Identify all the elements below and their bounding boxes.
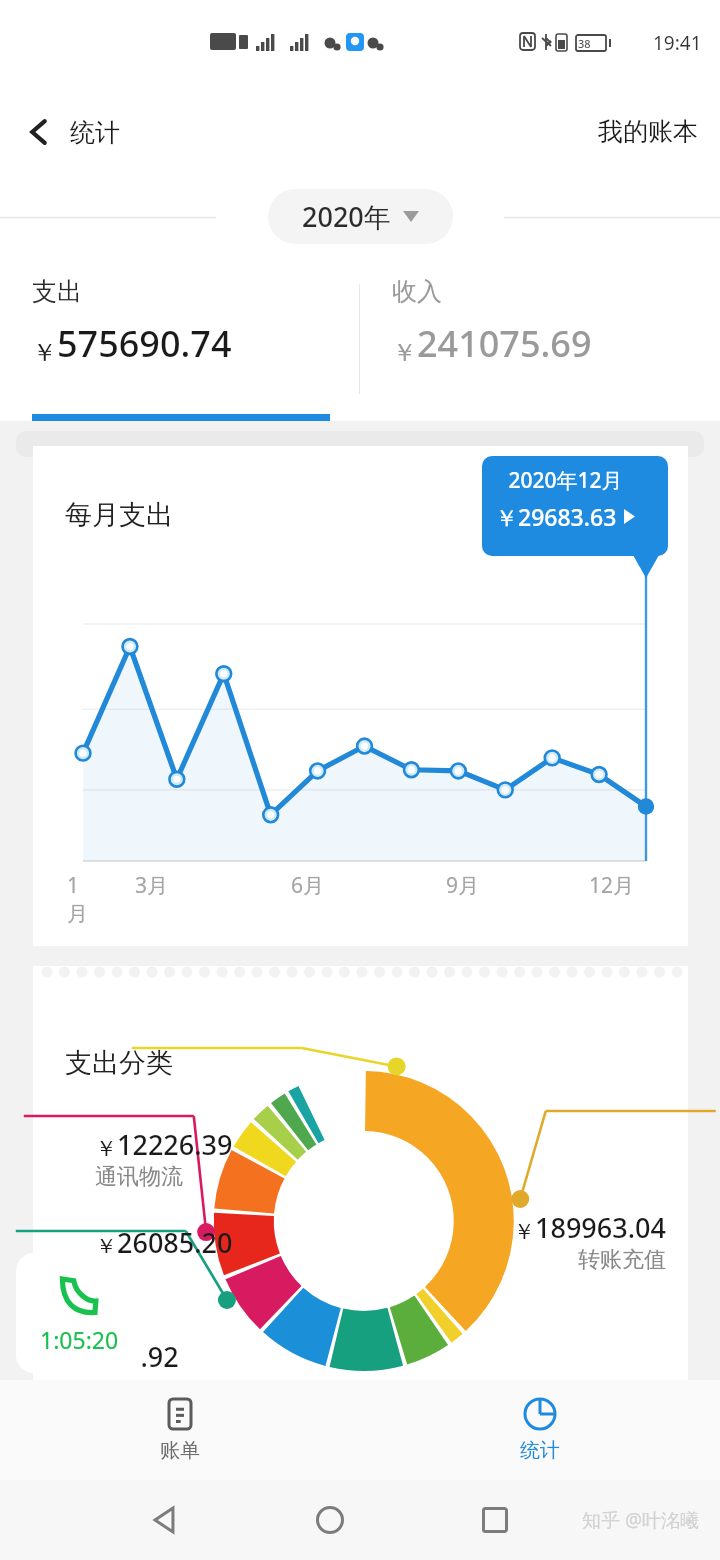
staticText: 2020年 [302, 198, 391, 235]
staticText: 9月 [446, 871, 480, 900]
staticText: 1:05:20 [40, 1324, 119, 1355]
staticText: 189963.04 [535, 1209, 666, 1246]
staticText: 2020年12月 [508, 466, 623, 495]
staticText: ￥ [95, 1135, 117, 1163]
staticText: 12226.39 [117, 1126, 233, 1163]
button[interactable]: 支出 [0, 256, 359, 421]
button[interactable]: 统计 [360, 1380, 720, 1480]
staticText: ￥ [32, 337, 57, 368]
staticText: 26085.20 [117, 1224, 233, 1261]
staticText: 知乎 @叶洺曦 [582, 1507, 700, 1533]
staticText: ￥ [392, 337, 417, 368]
staticText: 每月支出 [65, 498, 173, 532]
other: Back [26, 115, 52, 149]
button[interactable]: Back [0, 107, 132, 157]
button[interactable]: 每月支出 [33, 446, 688, 946]
button[interactable]: Ongoing call [16, 1253, 142, 1373]
staticText: 241075.69 [417, 319, 592, 368]
staticText: ￥ [95, 1233, 117, 1261]
staticText: 支出 [32, 276, 82, 307]
staticText: 12月 [589, 871, 635, 900]
staticText: 统计 [70, 117, 120, 148]
button[interactable]: 我的账本 [576, 106, 720, 157]
staticText: 38 [578, 36, 591, 51]
button[interactable]: Back [136, 1492, 192, 1548]
staticText: 我的账本 [598, 116, 698, 147]
staticText: 转账充值 [578, 1246, 666, 1274]
staticText: 0.92 [125, 1338, 179, 1375]
staticText: 账单 [160, 1438, 200, 1463]
button[interactable]: Recents [468, 1493, 522, 1547]
staticText: 收入 [392, 276, 442, 307]
staticText: 支出分类 [65, 1046, 173, 1080]
button[interactable]: 账单 [0, 1380, 360, 1480]
staticText: 3月 [135, 871, 169, 900]
button[interactable]: Home [302, 1492, 358, 1548]
button[interactable]: 支出分类 [33, 966, 688, 1380]
button[interactable]: 收入 [360, 256, 720, 421]
staticText: ￥ [513, 1218, 535, 1246]
staticText: 统计 [520, 1438, 560, 1463]
staticText: 通讯物流 [95, 1163, 183, 1191]
staticText: 575690.74 [57, 319, 232, 368]
staticText: 19:41 [653, 30, 702, 56]
staticText: 6月 [291, 871, 325, 900]
staticText: ￥29683.63 [495, 501, 617, 532]
button[interactable]: 2020年 [268, 189, 453, 244]
